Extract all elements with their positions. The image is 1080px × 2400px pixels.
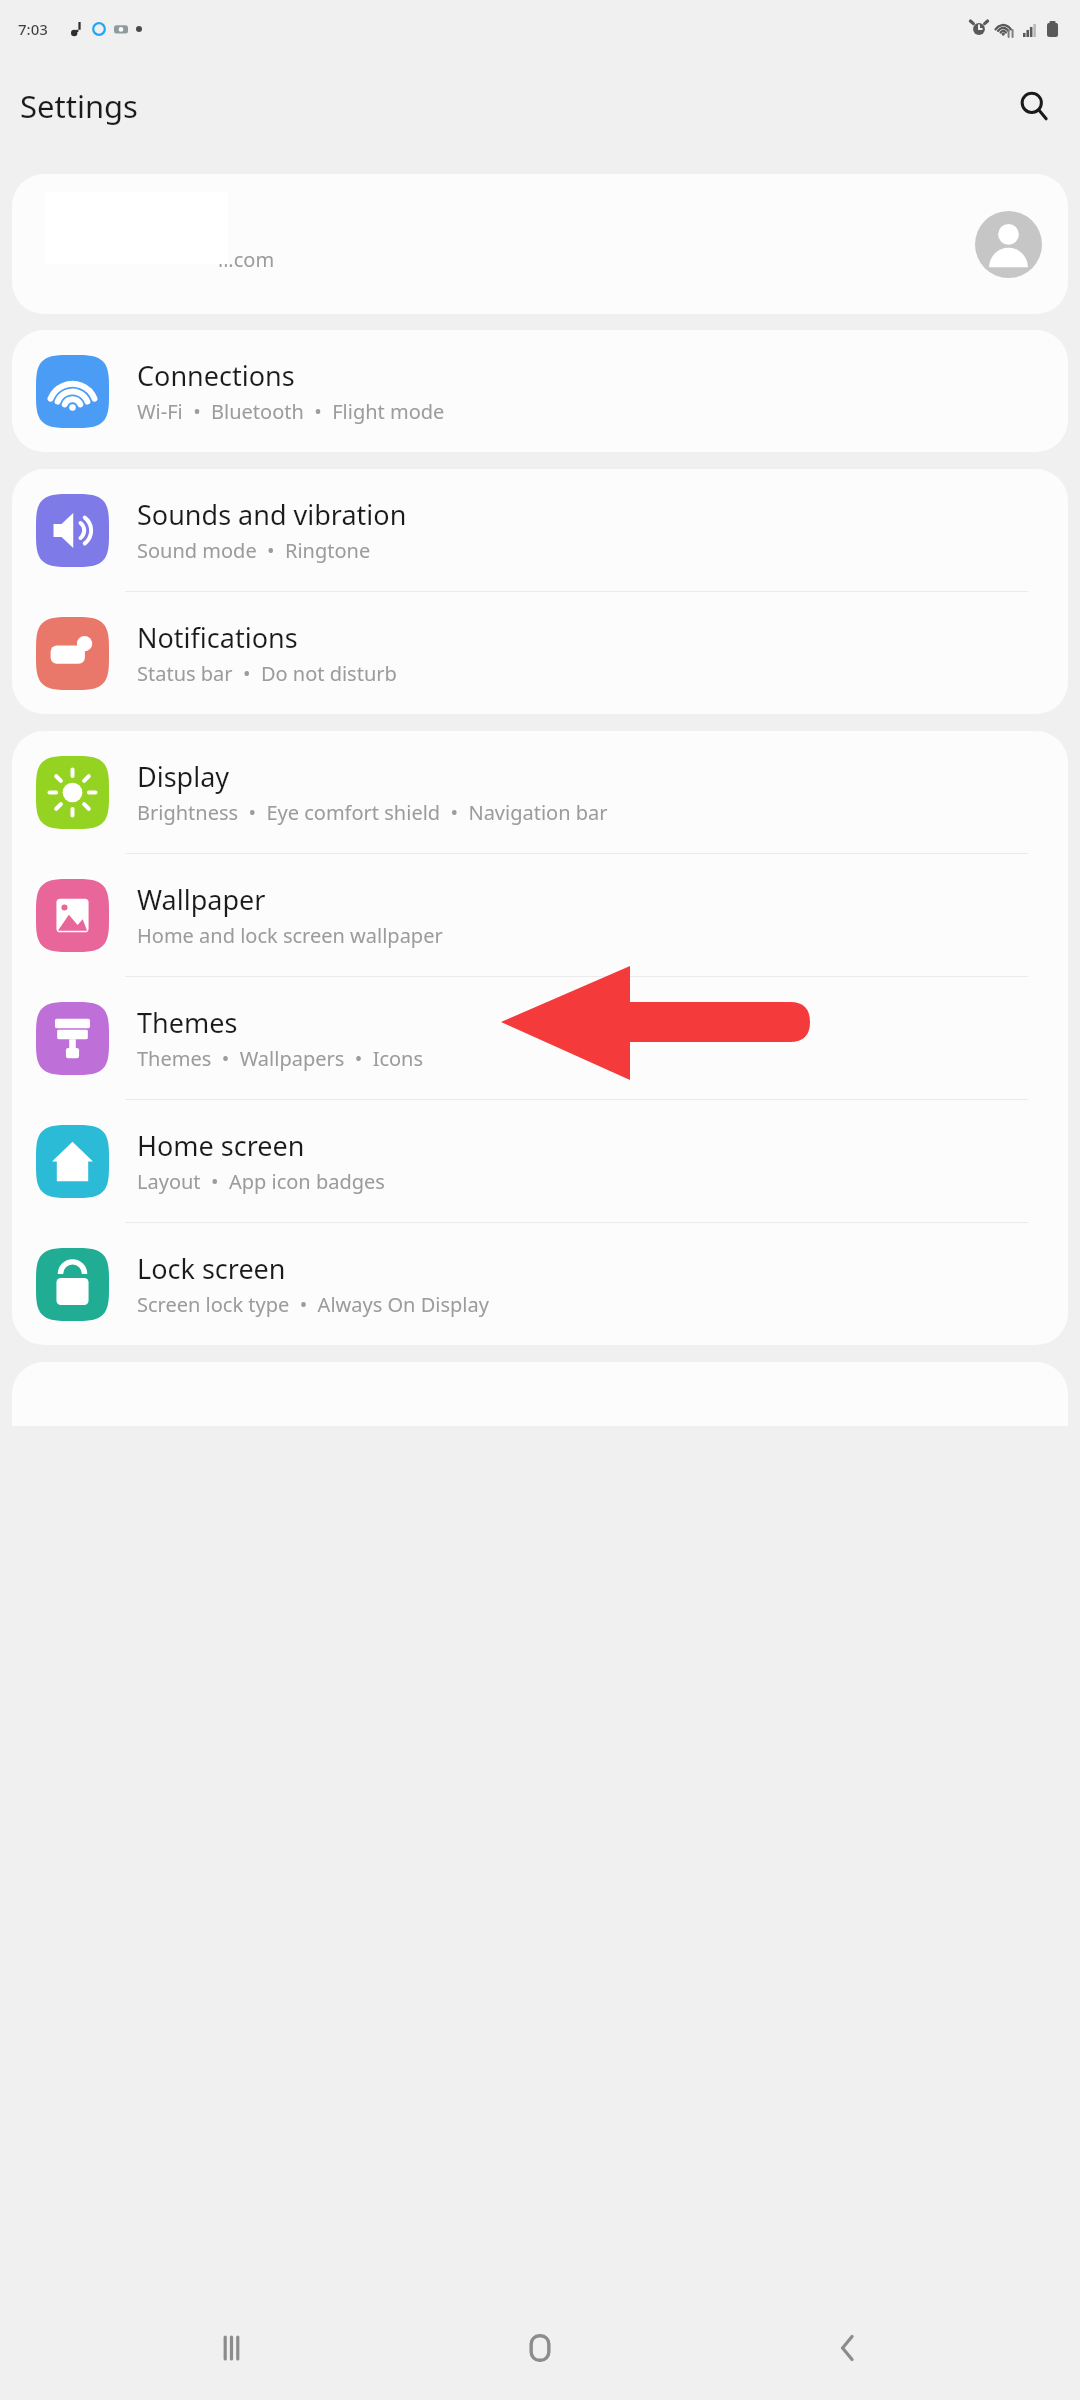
button[interactable]: Wallpaper (12, 854, 1068, 976)
button[interactable]: Lock screen (12, 1223, 1068, 1345)
staticText: Wallpaper (137, 881, 266, 918)
button[interactable]: il.com (12, 174, 1068, 314)
staticText: Themes • Wallpapers • Icons (137, 1045, 424, 1072)
button[interactable]: Home screen (12, 1100, 1068, 1222)
button[interactable]: Back (796, 2296, 900, 2400)
button[interactable]: Sounds and vibration (12, 469, 1068, 591)
staticText: Settings (20, 85, 138, 127)
staticText: Sound mode • Ringtone (137, 537, 371, 564)
staticText: Status bar • Do not disturb (137, 660, 397, 687)
staticText: Brightness • Eye comfort shield • Naviga… (137, 799, 608, 826)
staticText: Themes (137, 1004, 238, 1041)
staticText: il.com (218, 246, 275, 273)
staticText: Display (137, 758, 230, 795)
button[interactable]: Display (12, 731, 1068, 853)
staticText: Connections (137, 357, 295, 394)
staticText: Lock screen (137, 1250, 286, 1287)
staticText: Sounds and vibration (137, 496, 407, 533)
button[interactable]: Notifications (12, 592, 1068, 714)
button[interactable]: Recents (180, 2296, 284, 2400)
staticText: Wi-Fi • Bluetooth • Flight mode (137, 398, 445, 425)
staticText: Layout • App icon badges (137, 1168, 385, 1195)
button[interactable]: Home (488, 2296, 592, 2400)
button[interactable]: Themes (12, 977, 1068, 1099)
staticText: 7:03 (18, 19, 48, 39)
staticText: Screen lock type • Always On Display (137, 1291, 489, 1318)
staticText: Home and lock screen wallpaper (137, 922, 443, 949)
button[interactable]: Connections (12, 330, 1068, 452)
staticText: Home screen (137, 1127, 305, 1164)
button[interactable]: Search (1006, 78, 1062, 134)
staticText: Notifications (137, 619, 298, 656)
